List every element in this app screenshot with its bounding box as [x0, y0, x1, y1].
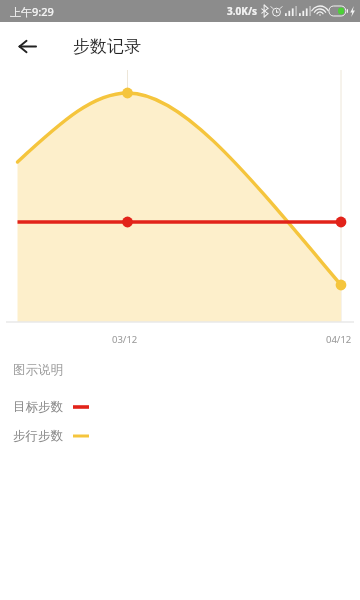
button[interactable]: 目标步数	[13, 397, 89, 417]
staticText: 03/12	[112, 333, 138, 346]
staticText: 目标步数	[13, 399, 63, 415]
staticText: 步行步数	[13, 428, 63, 444]
staticText: 04/12	[326, 333, 352, 346]
staticText: 步数记录	[73, 36, 141, 57]
staticText: 上午9:29	[10, 4, 54, 19]
staticText: 图示说明	[13, 362, 63, 378]
button[interactable]: 步行步数	[13, 426, 89, 446]
button[interactable]: Back	[10, 29, 44, 63]
staticText: 3.0K/s	[227, 4, 258, 18]
